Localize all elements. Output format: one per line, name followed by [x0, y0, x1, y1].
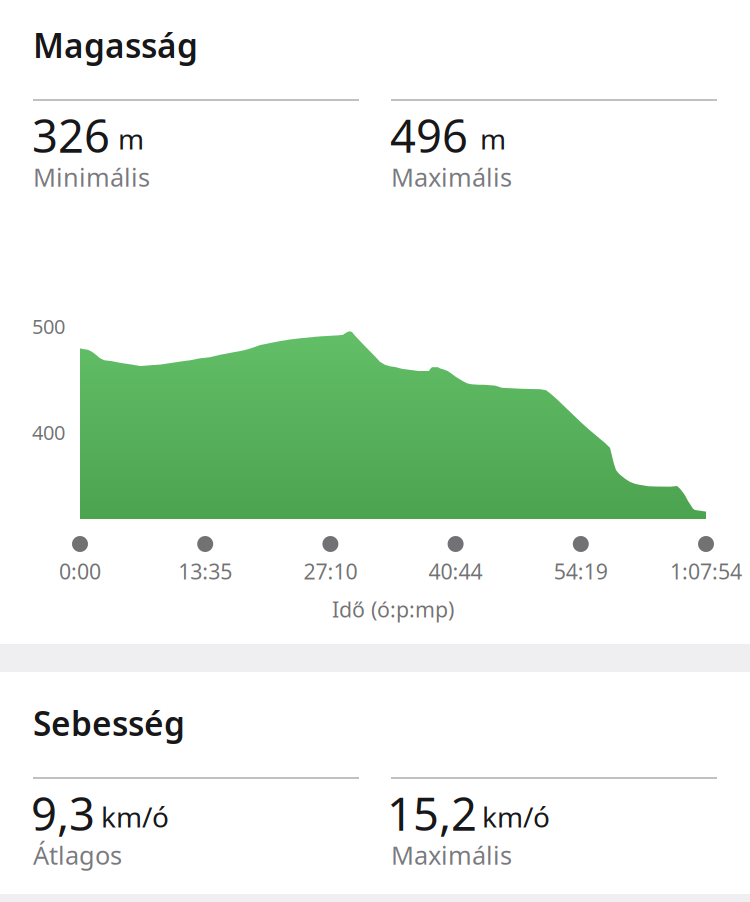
staticText: m [118, 120, 144, 157]
staticText: Magasság [33, 23, 198, 67]
staticText: Minimális [33, 160, 150, 194]
staticText: Maximális [391, 838, 512, 872]
staticText: Idő (ó:p:mp) [332, 595, 454, 623]
staticText: 15,2 [387, 783, 477, 843]
staticText: Maximális [391, 160, 512, 194]
staticText: 400 [32, 419, 65, 446]
staticText: 40:44 [429, 557, 483, 585]
staticText: 9,3 [31, 783, 95, 843]
staticText: 326 [32, 105, 110, 165]
button[interactable]: 9,3 [33, 777, 359, 865]
staticText: 0:00 [59, 557, 101, 585]
button[interactable]: 326 [33, 99, 359, 187]
staticText: m [480, 120, 506, 157]
staticText: Sebesség [33, 701, 185, 745]
staticText: 500 [32, 313, 65, 340]
staticText: 27:10 [303, 557, 357, 585]
staticText: 54:19 [554, 557, 608, 585]
staticText: 1:07:54 [670, 557, 742, 585]
staticText: Átlagos [33, 838, 122, 872]
staticText: 496 [390, 105, 468, 165]
staticText: km/ó [101, 798, 169, 835]
staticText: 13:35 [178, 557, 232, 585]
button[interactable]: 15,2 [391, 777, 717, 865]
button[interactable]: 496 [391, 99, 717, 187]
staticText: km/ó [482, 798, 550, 835]
